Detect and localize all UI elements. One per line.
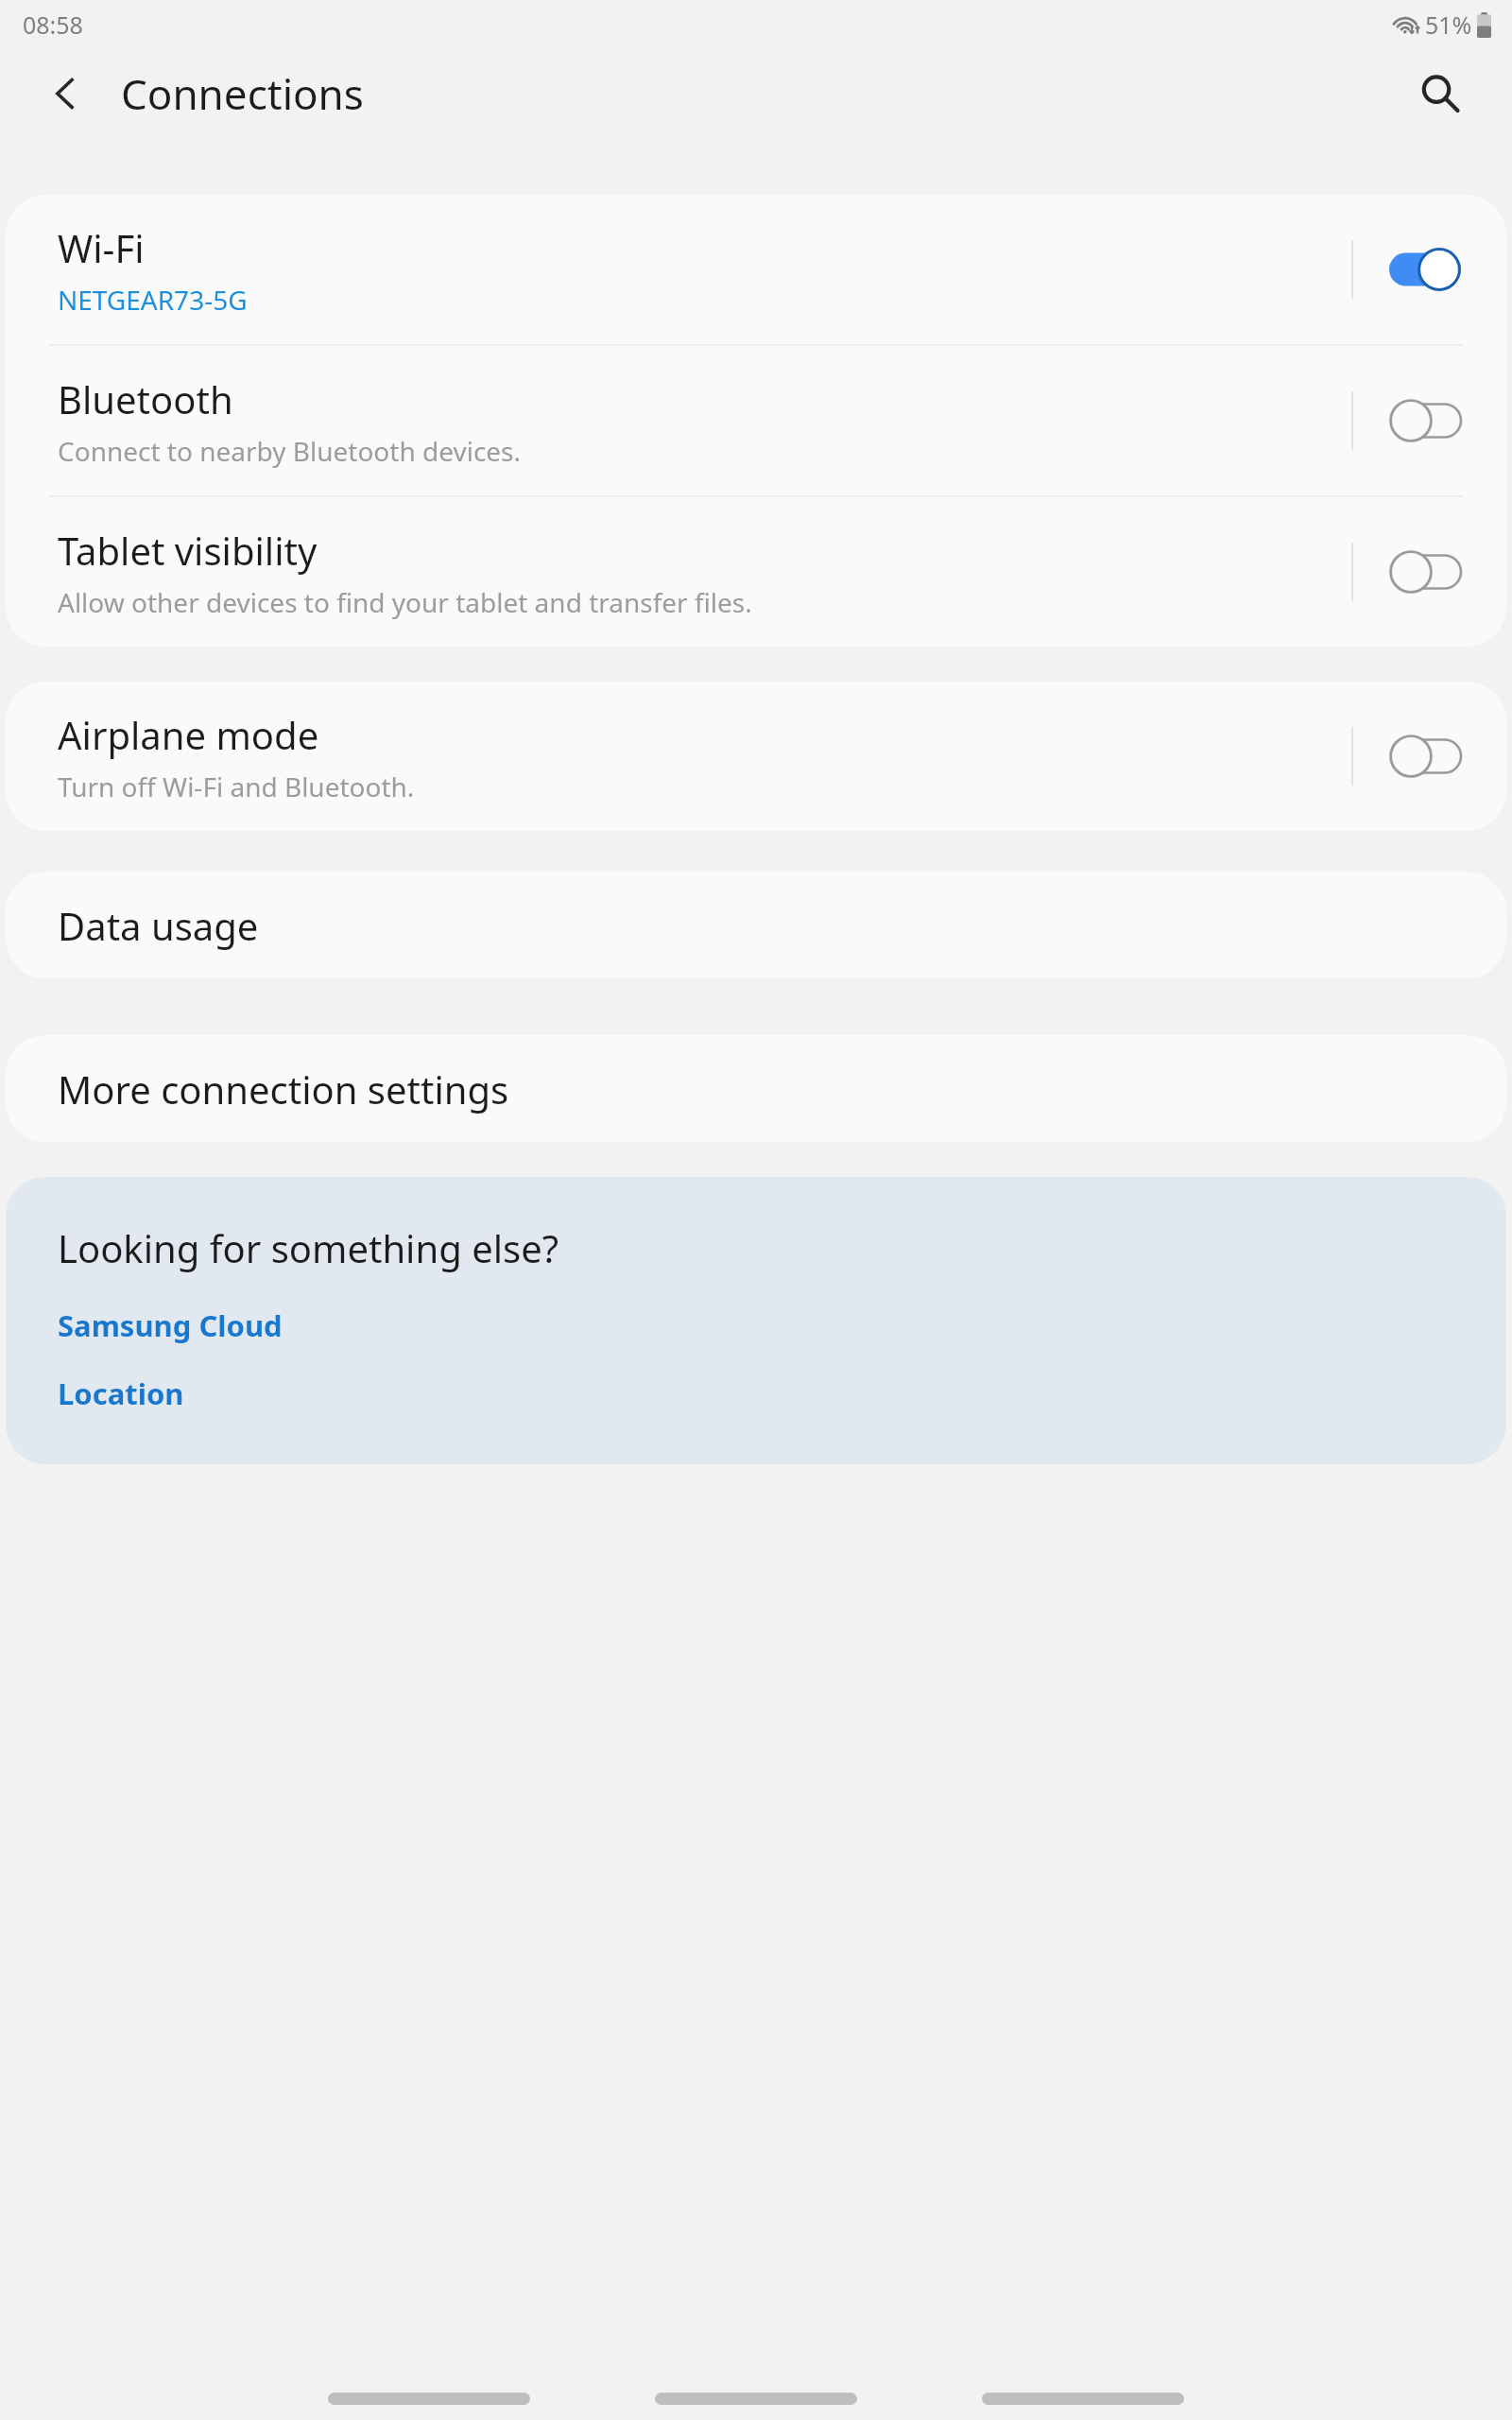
staticText: 51% (1425, 9, 1472, 41)
staticText: Turn off Wi-Fi and Bluetooth. (58, 769, 415, 804)
button[interactable]: Location (58, 1374, 184, 1413)
staticText: Airplane mode (58, 709, 319, 760)
staticText: Connect to nearby Bluetooth devices. (58, 433, 522, 469)
staticText: 08:58 (23, 9, 83, 41)
button[interactable]: Turn on (1389, 550, 1461, 594)
button[interactable]: Wi-Fi (6, 195, 1506, 344)
button[interactable]: Airplane mode (6, 682, 1506, 831)
button[interactable]: Search (1399, 52, 1482, 135)
button[interactable]: Back (982, 2393, 1184, 2405)
staticText: Wi-Fi (58, 222, 145, 273)
button[interactable]: Tablet visibility (6, 497, 1506, 647)
button[interactable]: Data usage (6, 872, 1506, 978)
button[interactable]: Turn on (1389, 399, 1461, 442)
button[interactable]: Home (655, 2393, 857, 2405)
button[interactable]: More connection settings (6, 1035, 1506, 1142)
button[interactable]: Turn off (1389, 248, 1461, 291)
button[interactable]: Turn on (1389, 735, 1461, 778)
staticText: Tablet visibility (58, 525, 318, 576)
staticText: NETGEAR73-5G (58, 282, 248, 318)
button[interactable]: Recents (328, 2393, 530, 2405)
staticText: Connections (121, 65, 364, 122)
staticText: Location (58, 1374, 184, 1413)
button[interactable]: Bluetooth (6, 346, 1506, 495)
staticText: Data usage (58, 900, 259, 951)
staticText: More connection settings (58, 1063, 509, 1115)
staticText: Allow other devices to find your tablet … (58, 584, 752, 620)
staticText: Samsung Cloud (58, 1305, 283, 1345)
staticText: Looking for something else? (58, 1222, 559, 1273)
button[interactable]: Navigate up (25, 52, 108, 135)
staticText: Bluetooth (58, 373, 233, 424)
button[interactable]: Samsung Cloud (58, 1305, 283, 1345)
